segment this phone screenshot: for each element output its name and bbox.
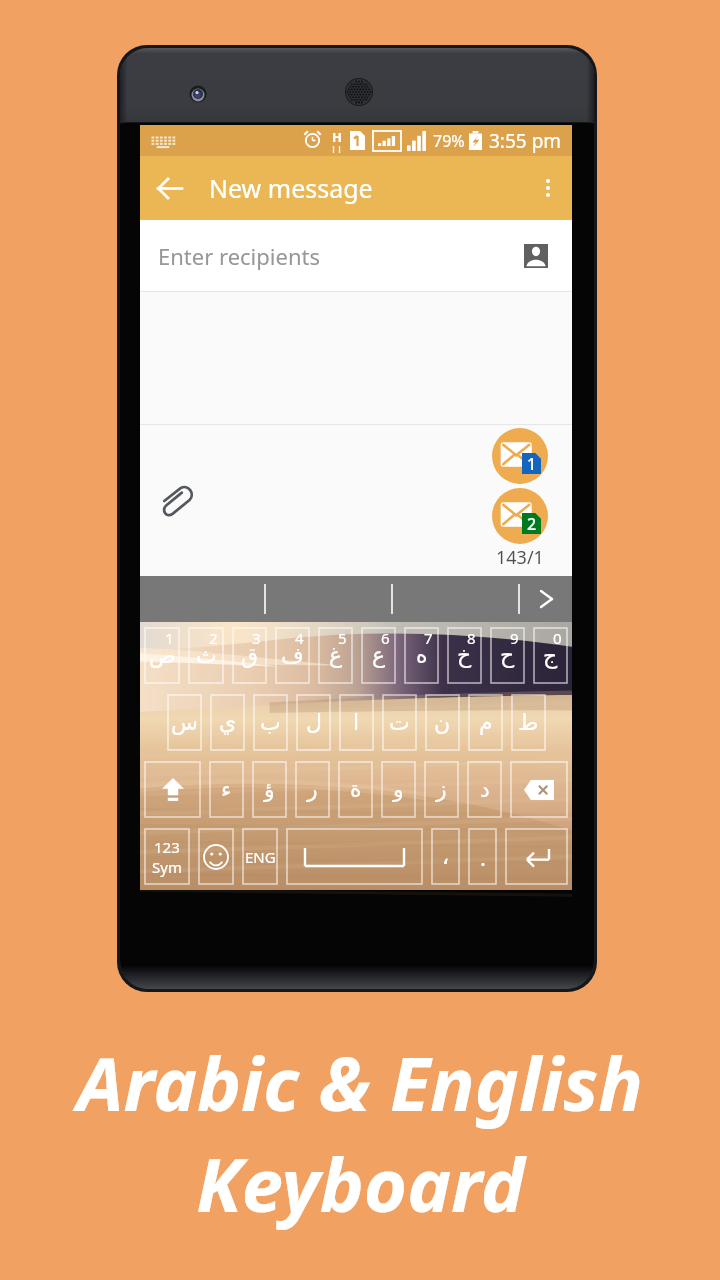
button[interactable]: د	[468, 762, 501, 817]
button[interactable]: ة	[339, 762, 372, 817]
staticText: ة	[350, 777, 362, 803]
button[interactable]: 123	[145, 829, 189, 884]
button[interactable]: ص	[145, 628, 179, 683]
button[interactable]: Add contact	[516, 236, 556, 276]
staticText: 2	[209, 628, 218, 648]
button[interactable]: ت	[383, 695, 416, 750]
staticText: 4	[295, 628, 304, 648]
staticText: ع	[372, 643, 386, 669]
staticText: ه	[416, 643, 428, 669]
button[interactable]: ENG	[243, 829, 277, 884]
button[interactable]: غ	[319, 628, 352, 683]
staticText: 8	[467, 628, 476, 648]
button[interactable]: م	[469, 695, 502, 750]
staticText: 1	[165, 628, 174, 648]
staticText: ل	[306, 710, 322, 736]
staticText: 9	[510, 628, 519, 648]
button[interactable]: ق	[233, 628, 266, 683]
staticText: ح	[500, 643, 515, 669]
button[interactable]: ز	[425, 762, 458, 817]
staticText: 0	[553, 628, 562, 648]
staticText: 5	[338, 628, 347, 648]
staticText: Keyboard	[196, 1133, 525, 1234]
button[interactable]: Attach file	[154, 477, 202, 525]
button[interactable]	[145, 762, 200, 817]
staticText: 2	[527, 513, 537, 534]
button[interactable]: ح	[491, 628, 524, 683]
button[interactable]: ل	[297, 695, 330, 750]
staticText: 6	[381, 628, 390, 648]
staticText: ا	[353, 710, 360, 736]
staticText: 3	[252, 628, 261, 648]
staticText: 3:55 pm	[489, 128, 562, 154]
button[interactable]: ع	[362, 628, 395, 683]
button[interactable]: Send message SIM 2	[492, 488, 548, 544]
button[interactable]: ن	[426, 695, 459, 750]
staticText: د	[480, 777, 490, 803]
staticText: Enter recipients	[158, 241, 320, 271]
staticText: و	[393, 777, 404, 803]
staticText: 1	[527, 453, 537, 474]
staticText: س	[171, 710, 198, 736]
button[interactable]	[511, 762, 567, 817]
staticText: .	[480, 842, 486, 872]
button[interactable]: ي	[211, 695, 244, 750]
staticText: ي	[219, 710, 237, 736]
staticText: ن	[434, 710, 451, 736]
staticText: Arabic & English	[77, 1032, 643, 1133]
staticText: م	[479, 710, 493, 736]
staticText: H	[332, 128, 342, 146]
staticText: ص	[149, 643, 176, 669]
button[interactable]: و	[382, 762, 415, 817]
staticText: New message	[209, 171, 373, 205]
button[interactable]: Back	[140, 159, 198, 217]
staticText: ط	[518, 710, 539, 736]
button[interactable]: Send message SIM 1	[492, 428, 548, 484]
staticText: ق	[241, 643, 259, 669]
button[interactable]	[506, 829, 567, 884]
button[interactable]: ء	[210, 762, 243, 817]
staticText: ر	[307, 777, 318, 803]
button[interactable]: More options	[524, 164, 572, 212]
staticText: خ	[457, 643, 472, 669]
staticText: ج	[543, 643, 558, 669]
button[interactable]	[199, 829, 233, 884]
button[interactable]	[287, 829, 422, 884]
staticText: ؤ	[264, 777, 275, 803]
staticText: 123	[154, 837, 180, 857]
button[interactable]: ؤ	[253, 762, 286, 817]
button[interactable]: .	[469, 829, 496, 884]
staticText: 143/1	[496, 545, 544, 570]
staticText: ت	[389, 710, 410, 736]
button[interactable]: ه	[405, 628, 438, 683]
button[interactable]: More suggestions	[520, 576, 572, 622]
staticText: غ	[329, 643, 343, 669]
staticText: ب	[260, 710, 281, 736]
button[interactable]: ا	[340, 695, 373, 750]
staticText: ف	[281, 643, 304, 669]
staticText: 79%	[433, 130, 465, 152]
button[interactable]: ر	[296, 762, 329, 817]
staticText: ،	[442, 844, 450, 870]
staticText: ENG	[245, 847, 276, 867]
button[interactable]: ث	[189, 628, 223, 683]
staticText: 7	[424, 628, 433, 648]
staticText: Sym	[152, 857, 182, 877]
button[interactable]: خ	[448, 628, 481, 683]
button[interactable]: ج	[534, 628, 567, 683]
staticText: ث	[196, 643, 217, 669]
button[interactable]: ط	[512, 695, 545, 750]
staticText: ز	[436, 777, 447, 803]
button[interactable]: ف	[276, 628, 309, 683]
button[interactable]: ب	[254, 695, 287, 750]
button[interactable]: ،	[432, 829, 459, 884]
staticText: ء	[221, 777, 232, 803]
button[interactable]: س	[168, 695, 201, 750]
